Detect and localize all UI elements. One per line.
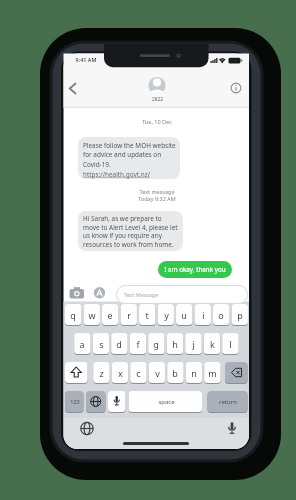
staticText: I am okay, thank you bbox=[164, 265, 226, 274]
staticText: q bbox=[70, 309, 76, 321]
button[interactable] bbox=[92, 285, 107, 300]
staticText: d bbox=[116, 338, 122, 350]
staticText: b bbox=[172, 367, 178, 379]
button[interactable]: i bbox=[195, 304, 211, 325]
button[interactable] bbox=[66, 284, 86, 301]
button[interactable]: e bbox=[102, 304, 118, 325]
staticText: 2822 bbox=[137, 96, 178, 105]
staticText: Tue, 10 Dec bbox=[117, 118, 197, 128]
button[interactable] bbox=[78, 211, 183, 251]
button[interactable] bbox=[78, 420, 95, 437]
button[interactable]: return bbox=[208, 391, 248, 412]
staticText: y bbox=[164, 309, 169, 321]
button[interactable]: t bbox=[139, 304, 155, 325]
staticText: resources to work from home. bbox=[83, 240, 193, 252]
button[interactable]: k bbox=[204, 333, 220, 354]
button[interactable] bbox=[108, 391, 126, 412]
button[interactable]: q bbox=[65, 304, 81, 325]
button[interactable]: c bbox=[130, 362, 146, 383]
button[interactable]: space bbox=[129, 391, 203, 412]
button[interactable]: s bbox=[93, 333, 109, 354]
staticText: Today 9:32 AM bbox=[117, 195, 197, 205]
staticText: https://health.govt.nz/ bbox=[83, 170, 193, 182]
button[interactable]: m bbox=[204, 362, 220, 383]
button[interactable]: a bbox=[74, 333, 90, 354]
staticText: j bbox=[192, 338, 195, 350]
staticText: f bbox=[136, 338, 140, 350]
button[interactable] bbox=[66, 79, 80, 98]
staticText: return bbox=[219, 398, 237, 406]
staticText: e bbox=[107, 309, 113, 321]
button[interactable]: x bbox=[112, 362, 128, 383]
button[interactable]: g bbox=[148, 333, 164, 354]
staticText: v bbox=[155, 367, 160, 379]
staticText: w bbox=[88, 309, 96, 321]
staticText: p bbox=[237, 309, 243, 321]
button[interactable]: o bbox=[213, 304, 229, 325]
staticText: 9:41 AM bbox=[72, 56, 100, 66]
staticText: x bbox=[118, 367, 123, 379]
staticText: c bbox=[136, 367, 141, 379]
staticText: Text Message bbox=[124, 291, 184, 301]
staticText: l bbox=[229, 338, 232, 350]
button[interactable]: u bbox=[176, 304, 192, 325]
button[interactable] bbox=[231, 287, 246, 301]
button[interactable]: n bbox=[186, 362, 202, 383]
button[interactable]: b bbox=[167, 362, 183, 383]
staticText: a bbox=[79, 338, 85, 350]
button[interactable]: 123 bbox=[65, 391, 84, 412]
staticText: Hi Sarah, as we prepare to bbox=[83, 214, 193, 226]
button[interactable]: l bbox=[222, 333, 238, 354]
staticText: z bbox=[99, 367, 104, 379]
staticText: g bbox=[153, 338, 159, 350]
staticText: u bbox=[181, 309, 187, 321]
staticText: Please follow the MOH website bbox=[83, 141, 193, 153]
staticText: us know if you require any bbox=[83, 231, 193, 243]
button[interactable]: v bbox=[149, 362, 165, 383]
staticText: r bbox=[127, 309, 131, 321]
staticText: n bbox=[191, 367, 197, 379]
button[interactable]: y bbox=[158, 304, 174, 325]
button[interactable]: I am okay, thank you bbox=[158, 261, 232, 278]
staticText: Text message bbox=[117, 188, 197, 198]
staticText: Covid-19. bbox=[83, 160, 193, 172]
button[interactable]: h bbox=[167, 333, 183, 354]
staticText: i bbox=[202, 309, 205, 321]
button[interactable] bbox=[86, 391, 106, 412]
staticText: space bbox=[158, 398, 175, 406]
button[interactable]: j bbox=[185, 333, 201, 354]
staticText: t bbox=[145, 309, 149, 321]
button[interactable] bbox=[78, 137, 180, 179]
staticText: s bbox=[99, 338, 104, 350]
button[interactable]: r bbox=[121, 304, 137, 325]
button[interactable] bbox=[82, 168, 155, 179]
staticText: 123 bbox=[70, 398, 80, 405]
button[interactable]: d bbox=[111, 333, 127, 354]
button[interactable] bbox=[228, 80, 244, 96]
button[interactable] bbox=[116, 285, 248, 304]
button[interactable]: z bbox=[93, 362, 109, 383]
button[interactable]: p bbox=[232, 304, 248, 325]
staticText: m bbox=[208, 367, 217, 379]
staticText: move to Alert Level 4, please let bbox=[83, 223, 193, 235]
button[interactable] bbox=[225, 362, 248, 383]
button[interactable] bbox=[224, 420, 240, 437]
button[interactable] bbox=[65, 362, 88, 383]
staticText: h bbox=[172, 338, 178, 350]
staticText: o bbox=[218, 309, 224, 321]
staticText: for advice and updates on bbox=[83, 150, 193, 162]
staticText: k bbox=[210, 338, 215, 350]
button[interactable]: w bbox=[84, 304, 100, 325]
button[interactable] bbox=[145, 73, 169, 105]
button[interactable]: f bbox=[130, 333, 146, 354]
